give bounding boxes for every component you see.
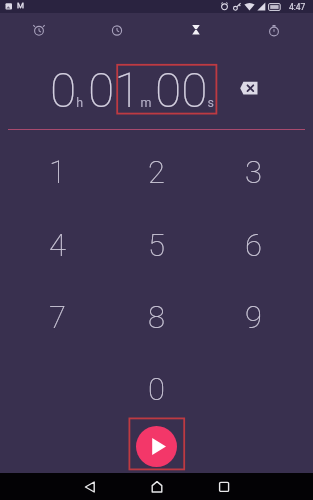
staticText: 3 <box>245 154 262 190</box>
staticText: 00s <box>155 62 214 118</box>
button[interactable]: 9 <box>205 282 302 351</box>
button[interactable]: 8 <box>108 282 205 351</box>
staticText: 0 <box>148 371 165 407</box>
staticText: 2 <box>148 154 165 190</box>
button[interactable]: 7 <box>9 282 106 351</box>
button[interactable]: 5 <box>108 210 205 279</box>
button[interactable] <box>235 13 313 46</box>
button[interactable] <box>78 13 156 46</box>
staticText: 7 <box>49 299 66 335</box>
staticText: 6 <box>245 227 262 263</box>
button[interactable] <box>127 473 186 500</box>
button[interactable] <box>194 473 253 500</box>
staticText: 01m <box>88 62 152 118</box>
button[interactable]: 1 <box>9 137 106 206</box>
button[interactable]: 3 <box>205 137 302 206</box>
button[interactable]: 6 <box>205 210 302 279</box>
staticText: M <box>17 1 24 10</box>
button[interactable] <box>233 75 266 105</box>
staticText: 4 <box>49 227 66 263</box>
staticText: 4:47 <box>289 2 306 12</box>
button[interactable] <box>0 13 78 46</box>
button[interactable]: 2 <box>108 137 205 206</box>
button[interactable]: 4 <box>9 210 106 279</box>
button[interactable] <box>60 473 119 500</box>
staticText: 5 <box>148 227 165 263</box>
staticText: 1 <box>49 154 66 190</box>
staticText: 0h <box>50 62 84 118</box>
button[interactable] <box>136 426 177 467</box>
button[interactable]: 0 <box>108 354 205 423</box>
button[interactable] <box>157 13 235 46</box>
staticText: 9 <box>245 299 262 335</box>
staticText: 8 <box>148 299 165 335</box>
